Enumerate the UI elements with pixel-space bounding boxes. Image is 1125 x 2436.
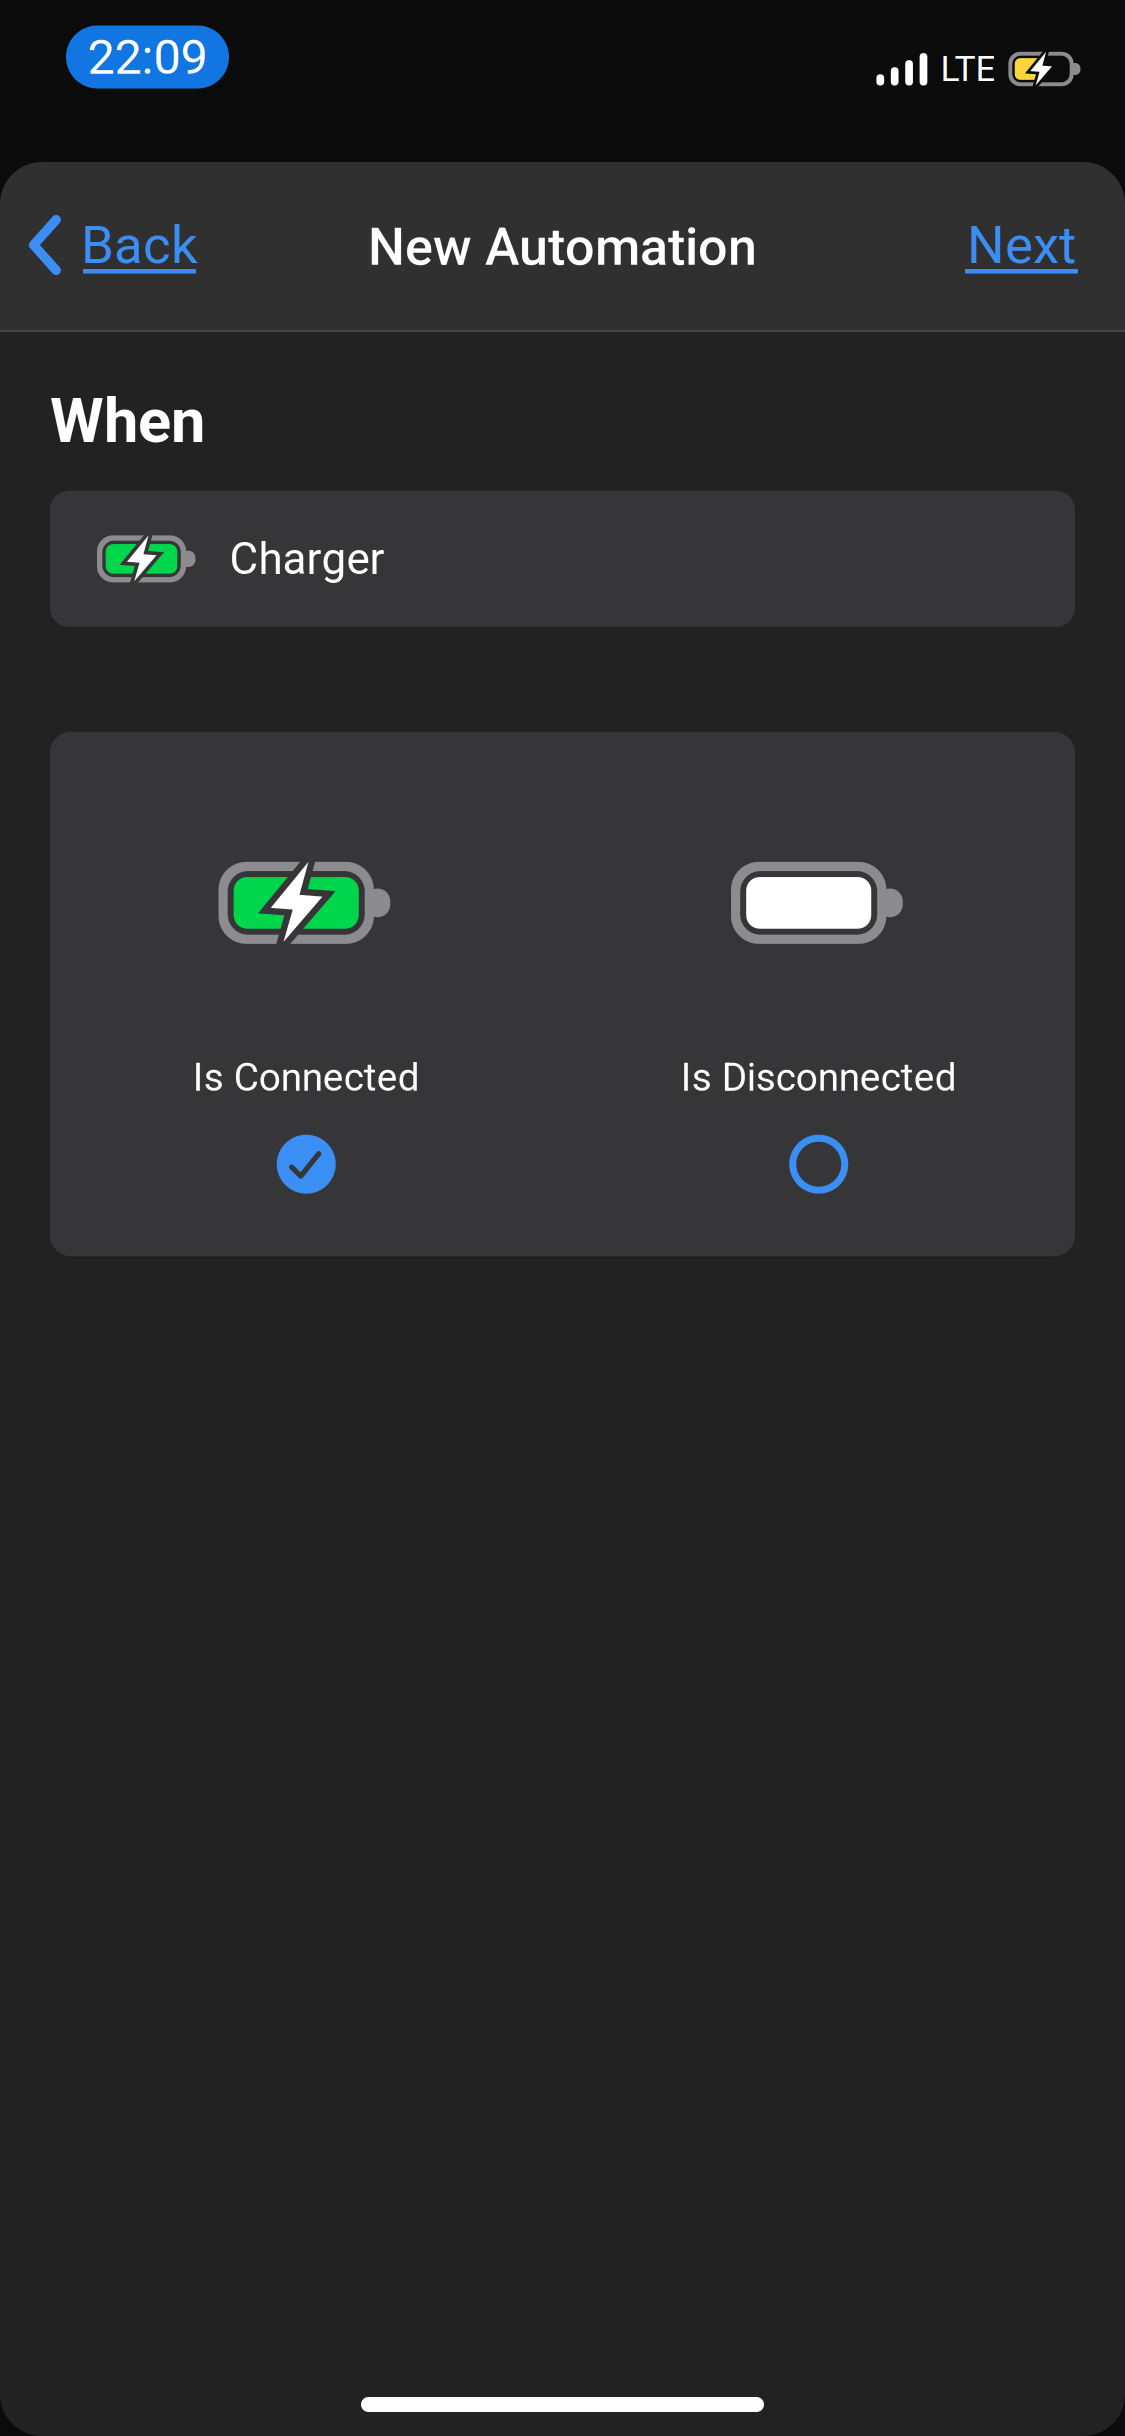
button[interactable]: Is Connected: [50, 732, 562, 1256]
staticText: Next: [967, 214, 1076, 276]
button[interactable]: Next: [965, 195, 1125, 297]
button[interactable]: Is Disconnected: [562, 732, 1075, 1256]
staticText: Is Connected: [193, 1055, 420, 1100]
staticText: Charger: [230, 533, 385, 585]
staticText: LTE: [940, 48, 995, 90]
staticText: New Automation: [368, 216, 757, 277]
button[interactable]: Charger: [50, 491, 1075, 627]
staticText: 22:09: [87, 28, 207, 85]
button[interactable]: Back: [0, 195, 196, 297]
staticText: Back: [81, 214, 198, 276]
staticText: Is Disconnected: [681, 1055, 957, 1100]
staticText: When: [50, 385, 205, 457]
